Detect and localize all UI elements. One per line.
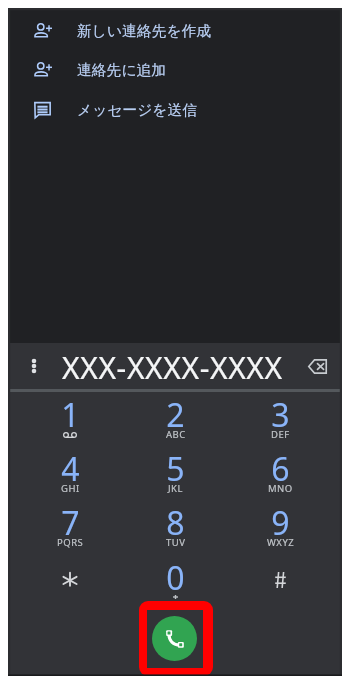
button[interactable]: Backspace (305, 354, 329, 378)
staticText: PQRS (57, 536, 84, 549)
staticText: GHI (61, 482, 80, 495)
button[interactable]: 4 (17, 447, 123, 495)
staticText: WXYZ (267, 536, 295, 549)
staticText: 3 (271, 393, 290, 437)
button[interactable]: 6 (228, 447, 333, 495)
staticText: 5 (166, 447, 185, 491)
button[interactable]: メッセージを送信 (8, 91, 342, 129)
button[interactable]: 3 (228, 393, 333, 441)
button[interactable]: 7 (17, 501, 123, 549)
button[interactable]: 5 (123, 447, 228, 495)
button[interactable]: 0 (123, 556, 228, 604)
staticText: XXX-XXXX-XXXX (62, 347, 283, 388)
staticText: 1 (61, 393, 80, 437)
staticText: 2 (166, 393, 185, 437)
button[interactable]: 連絡先に追加 (8, 51, 342, 89)
staticText: 6 (271, 447, 290, 491)
staticText: 4 (61, 447, 80, 491)
staticText: 連絡先に追加 (77, 61, 167, 80)
button[interactable]: 9 (228, 501, 333, 549)
button[interactable]: 1 (17, 393, 123, 441)
staticText: 新しい連絡先を作成 (77, 22, 212, 41)
staticText: メッセージを送信 (77, 101, 198, 120)
button[interactable]: 新しい連絡先を作成 (8, 12, 342, 50)
staticText: 9 (271, 501, 290, 545)
button[interactable]: More options (22, 354, 46, 378)
staticText: 0 (166, 556, 185, 600)
button[interactable]: 8 (123, 501, 228, 549)
staticText: 8 (166, 501, 185, 545)
button[interactable] (17, 556, 123, 604)
button[interactable] (228, 556, 333, 604)
button[interactable]: 2 (123, 393, 228, 441)
button[interactable]: Call (152, 616, 197, 661)
staticText: JKL (168, 482, 183, 495)
staticText: ABC (166, 428, 186, 441)
staticText: 7 (61, 501, 80, 545)
staticText: MNO (268, 482, 293, 495)
staticText: TUV (166, 536, 186, 549)
staticText: DEF (271, 428, 290, 441)
